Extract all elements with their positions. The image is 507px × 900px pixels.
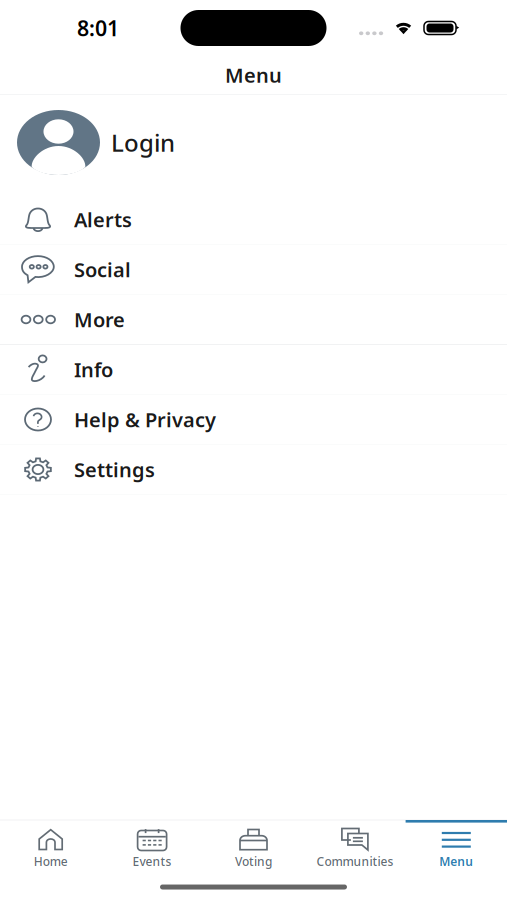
staticText: More [74, 306, 125, 333]
staticText: Menu [225, 62, 282, 88]
staticText: Login [111, 127, 175, 158]
staticText: Social [74, 256, 131, 283]
staticText: Voting [235, 853, 272, 869]
staticText: 8:01 [77, 14, 119, 42]
staticText: Info [74, 356, 113, 383]
staticText: Menu [439, 853, 473, 869]
button[interactable]: Alerts [0, 195, 507, 244]
button[interactable]: Voting [203, 820, 304, 874]
button[interactable]: Menu [406, 820, 507, 874]
button[interactable]: Home [0, 820, 101, 874]
button[interactable]: Settings [0, 445, 507, 494]
button[interactable]: Social [0, 245, 507, 294]
staticText: Events [133, 853, 172, 869]
staticText: Communities [316, 853, 393, 869]
staticText: Help & Privacy [74, 406, 216, 433]
button[interactable]: Communities [304, 820, 406, 874]
staticText: Alerts [74, 206, 132, 233]
staticText: Home [34, 853, 68, 869]
button[interactable]: Info [0, 345, 507, 394]
button[interactable]: More [0, 295, 507, 344]
button[interactable]: Events [101, 820, 203, 874]
button[interactable]: Login [0, 95, 507, 195]
staticText: Settings [74, 456, 155, 483]
button[interactable]: Help & Privacy [0, 395, 507, 444]
